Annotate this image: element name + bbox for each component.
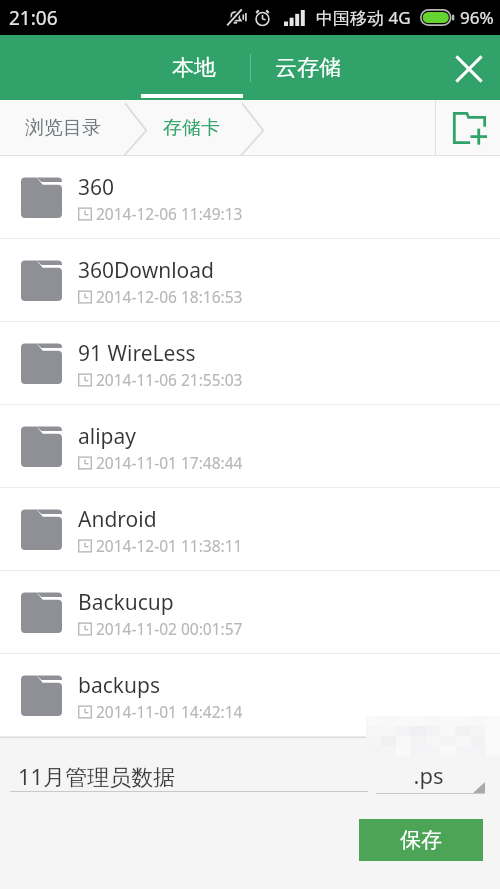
staticText: 2014-12-06 11:49:13 — [96, 203, 243, 224]
staticText: 2014-11-02 00:01:57 — [96, 618, 243, 639]
staticText: 浏览目录 — [25, 116, 101, 140]
button[interactable]: 保存 — [359, 819, 483, 861]
button[interactable]: alipay — [0, 405, 500, 488]
staticText: 96% — [460, 6, 494, 29]
staticText: 2014-11-06 21:55:03 — [96, 369, 243, 390]
button[interactable]: New folder — [436, 100, 500, 155]
staticText: 2014-12-01 11:38:11 — [96, 535, 243, 556]
button[interactable]: Backucup — [0, 571, 500, 654]
staticText: Android — [78, 505, 157, 534]
staticText: 21:06 — [9, 5, 58, 31]
button[interactable]: 云存储 — [253, 35, 363, 100]
staticText: backups — [78, 671, 160, 700]
button[interactable]: 360Download — [0, 239, 500, 322]
staticText: alipay — [78, 422, 137, 451]
staticText: 11月管理员数据 — [18, 761, 176, 791]
button[interactable]: 360 — [0, 156, 500, 239]
staticText: 存储卡 — [163, 116, 220, 140]
staticText: 本地 — [172, 54, 216, 82]
button[interactable]: 本地 — [142, 35, 245, 100]
staticText: .ps — [376, 760, 481, 790]
button[interactable]: Android — [0, 488, 500, 571]
button[interactable]: 91 WireLess — [0, 322, 500, 405]
staticText: 2014-11-01 17:48:44 — [96, 452, 243, 473]
staticText: 2014-12-06 18:16:53 — [96, 286, 243, 307]
staticText: 360 — [78, 173, 115, 202]
button[interactable]: backups — [0, 654, 500, 737]
staticText: 2014-11-01 14:42:14 — [96, 701, 243, 722]
button[interactable]: 浏览目录 — [12, 100, 114, 155]
staticText: 91 WireLess — [78, 339, 196, 368]
button[interactable]: 存储卡 — [155, 100, 227, 155]
button[interactable]: Close — [446, 46, 491, 91]
staticText: Backucup — [78, 588, 174, 617]
staticText: 中国移动 4G — [316, 6, 411, 29]
staticText: 云存储 — [275, 54, 341, 82]
staticText: 保存 — [400, 827, 442, 853]
staticText: 360Download — [78, 256, 214, 285]
